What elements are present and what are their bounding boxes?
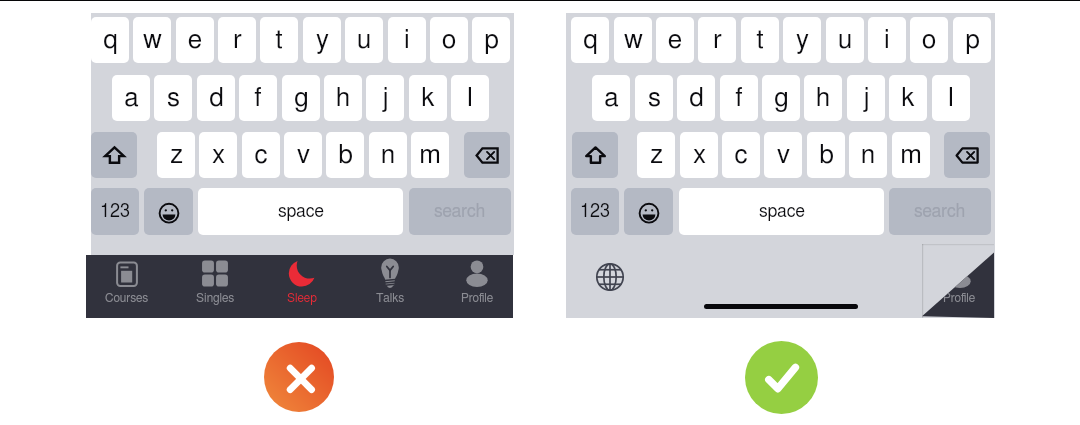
button[interactable]: w bbox=[614, 17, 652, 63]
staticText: Courses bbox=[105, 292, 149, 304]
staticText: Singles bbox=[196, 292, 235, 304]
button[interactable]: m bbox=[411, 132, 449, 178]
staticText: r bbox=[713, 27, 722, 53]
staticText: o bbox=[442, 27, 456, 53]
button[interactable]: b bbox=[326, 132, 364, 178]
button[interactable]: y bbox=[783, 17, 821, 63]
staticText: 123 bbox=[580, 203, 611, 221]
button[interactable]: Backspace bbox=[464, 132, 510, 178]
staticText: y bbox=[316, 27, 329, 53]
button[interactable]: r bbox=[218, 17, 256, 63]
button[interactable]: Sleep bbox=[258, 255, 346, 318]
button[interactable]: w bbox=[133, 17, 171, 63]
button[interactable]: l bbox=[932, 75, 970, 121]
button[interactable]: search bbox=[889, 188, 991, 235]
button[interactable]: y bbox=[303, 17, 341, 63]
button[interactable]: k bbox=[889, 75, 927, 121]
button[interactable]: o bbox=[430, 17, 468, 63]
button[interactable]: c bbox=[722, 132, 760, 178]
button[interactable]: space bbox=[679, 188, 884, 235]
button[interactable]: e bbox=[176, 17, 214, 63]
button[interactable]: p bbox=[472, 17, 510, 63]
button[interactable]: Shift bbox=[91, 132, 137, 178]
button[interactable]: s bbox=[154, 75, 192, 121]
staticText: c bbox=[254, 142, 268, 168]
button[interactable]: u bbox=[345, 17, 383, 63]
staticText: s bbox=[648, 85, 661, 111]
button[interactable]: e bbox=[656, 17, 694, 63]
staticText: Profile bbox=[461, 292, 494, 304]
button[interactable]: j bbox=[847, 75, 885, 121]
button[interactable]: t bbox=[260, 17, 298, 63]
staticText: Sleep bbox=[287, 292, 317, 304]
staticText: t bbox=[756, 27, 764, 53]
staticText: Profile bbox=[943, 292, 976, 304]
button[interactable]: d bbox=[677, 75, 715, 121]
button[interactable]: b bbox=[807, 132, 845, 178]
staticText: n bbox=[381, 142, 395, 168]
button[interactable]: Backspace bbox=[944, 132, 990, 178]
button[interactable]: i bbox=[868, 17, 906, 63]
staticText: h bbox=[816, 85, 830, 111]
staticText: v bbox=[777, 142, 790, 168]
button[interactable]: 123 bbox=[571, 188, 619, 235]
button[interactable]: Shift bbox=[572, 132, 618, 178]
button[interactable]: 123 bbox=[91, 188, 139, 235]
staticText: v bbox=[297, 142, 310, 168]
staticText: t bbox=[275, 27, 283, 53]
staticText: search bbox=[914, 203, 966, 221]
button[interactable]: Emoji keyboard bbox=[624, 188, 673, 235]
button[interactable]: f bbox=[720, 75, 758, 121]
button[interactable]: c bbox=[242, 132, 280, 178]
button[interactable]: Singles bbox=[171, 255, 259, 318]
button[interactable]: t bbox=[741, 17, 779, 63]
staticText: q bbox=[103, 27, 118, 53]
button[interactable]: Correct example bbox=[745, 341, 818, 414]
button[interactable]: z bbox=[157, 132, 195, 178]
staticText: space bbox=[278, 203, 324, 221]
button[interactable]: i bbox=[388, 17, 426, 63]
staticText: d bbox=[209, 85, 224, 111]
button[interactable]: space bbox=[198, 188, 403, 235]
button[interactable]: x bbox=[680, 132, 718, 178]
button[interactable]: Emoji keyboard bbox=[144, 188, 193, 235]
button[interactable]: Courses bbox=[83, 255, 171, 318]
staticText: d bbox=[689, 85, 704, 111]
staticText: z bbox=[170, 142, 183, 168]
button[interactable]: a bbox=[112, 75, 150, 121]
button[interactable]: q bbox=[571, 17, 609, 63]
button[interactable]: Incorrect example bbox=[264, 342, 334, 412]
staticText: e bbox=[668, 27, 682, 53]
button[interactable]: u bbox=[826, 17, 864, 63]
button[interactable]: o bbox=[910, 17, 948, 63]
button[interactable]: v bbox=[284, 132, 322, 178]
button[interactable]: v bbox=[764, 132, 802, 178]
staticText: r bbox=[233, 27, 242, 53]
button[interactable]: f bbox=[239, 75, 277, 121]
button[interactable]: Talks bbox=[346, 255, 434, 318]
button[interactable]: h bbox=[324, 75, 362, 121]
button[interactable]: Switch keyboard language bbox=[596, 263, 624, 291]
button[interactable]: r bbox=[698, 17, 736, 63]
button[interactable]: l bbox=[451, 75, 489, 121]
button[interactable]: h bbox=[804, 75, 842, 121]
button[interactable]: a bbox=[592, 75, 630, 121]
button[interactable]: z bbox=[637, 132, 675, 178]
button[interactable]: m bbox=[892, 132, 930, 178]
button[interactable]: k bbox=[409, 75, 447, 121]
button[interactable]: g bbox=[282, 75, 320, 121]
button[interactable]: n bbox=[369, 132, 407, 178]
button[interactable]: n bbox=[849, 132, 887, 178]
button[interactable]: j bbox=[366, 75, 404, 121]
button[interactable]: p bbox=[953, 17, 991, 63]
staticText: i bbox=[404, 27, 410, 53]
button[interactable]: s bbox=[635, 75, 673, 121]
staticText: Talks bbox=[376, 292, 405, 304]
button[interactable]: x bbox=[199, 132, 237, 178]
button[interactable]: g bbox=[762, 75, 800, 121]
staticText: a bbox=[604, 85, 619, 111]
button[interactable]: q bbox=[91, 17, 129, 63]
button[interactable]: search bbox=[409, 188, 511, 235]
button[interactable]: Profile bbox=[433, 255, 521, 318]
button[interactable]: d bbox=[197, 75, 235, 121]
